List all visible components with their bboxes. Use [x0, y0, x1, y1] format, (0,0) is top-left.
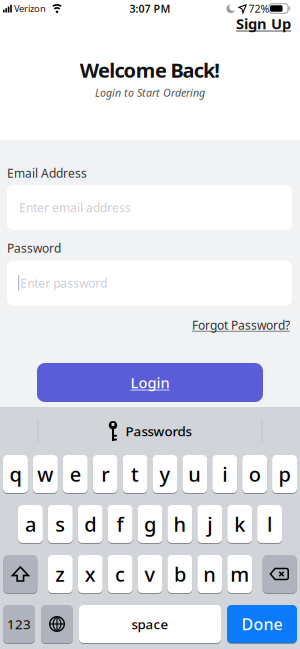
- button[interactable]: i: [212, 455, 237, 493]
- button[interactable]: Enter email address: [7, 185, 292, 230]
- staticText: 3:07 PM: [129, 1, 170, 16]
- staticText: Welcome Back!: [80, 57, 220, 83]
- staticText: n: [203, 561, 216, 587]
- button[interactable]: f: [108, 505, 132, 543]
- staticText: Password: [7, 240, 61, 256]
- staticText: h: [173, 511, 186, 537]
- staticText: v: [144, 561, 155, 587]
- staticText: Enter password: [20, 275, 107, 291]
- button[interactable]: z: [48, 555, 73, 593]
- staticText: x: [85, 561, 96, 587]
- staticText: f: [117, 511, 124, 537]
- button[interactable]: d: [78, 505, 103, 543]
- staticText: Passwords: [125, 422, 191, 440]
- button[interactable]: s: [48, 505, 73, 543]
- button[interactable]: n: [197, 555, 222, 593]
- staticText: z: [55, 561, 65, 587]
- staticText: w: [37, 461, 53, 487]
- button[interactable]: Done: [227, 605, 297, 643]
- button[interactable]: u: [182, 455, 207, 493]
- staticText: m: [230, 561, 249, 587]
- button[interactable]: [3, 555, 37, 593]
- button[interactable]: space: [79, 605, 221, 643]
- button[interactable]: g: [137, 505, 162, 543]
- staticText: o: [249, 461, 261, 487]
- button[interactable]: h: [167, 505, 192, 543]
- button[interactable]: [263, 555, 297, 593]
- button[interactable]: Sign Up: [236, 14, 291, 33]
- button[interactable]: w: [33, 455, 58, 493]
- staticText: Verizon: [14, 2, 46, 15]
- staticText: y: [159, 461, 170, 487]
- button[interactable]: Forgot Password?: [192, 317, 290, 333]
- button[interactable]: Enter password: [7, 260, 292, 305]
- button[interactable]: p: [272, 455, 297, 493]
- staticText: Enter email address: [19, 199, 131, 215]
- button[interactable]: b: [167, 555, 192, 593]
- staticText: u: [188, 461, 201, 487]
- staticText: 72%: [248, 1, 269, 16]
- staticText: Email Address: [7, 165, 87, 181]
- staticText: t: [131, 461, 139, 487]
- staticText: Login to Start Ordering: [95, 85, 205, 100]
- staticText: b: [174, 561, 186, 587]
- button[interactable]: Login: [37, 363, 263, 402]
- staticText: i: [222, 461, 227, 487]
- button[interactable]: q: [3, 455, 28, 493]
- staticText: a: [25, 511, 36, 537]
- staticText: j: [207, 511, 212, 537]
- staticText: p: [279, 461, 291, 487]
- staticText: e: [70, 461, 81, 487]
- staticText: c: [115, 561, 125, 587]
- staticText: d: [84, 511, 96, 537]
- staticText: 123: [7, 615, 31, 633]
- staticText: r: [101, 461, 109, 487]
- staticText: l: [267, 511, 272, 537]
- button[interactable]: m: [227, 555, 252, 593]
- button[interactable]: v: [137, 555, 162, 593]
- staticText: Done: [241, 613, 282, 635]
- button[interactable]: x: [78, 555, 103, 593]
- staticText: k: [234, 511, 245, 537]
- staticText: s: [55, 511, 65, 537]
- button[interactable]: l: [257, 505, 282, 543]
- button[interactable]: o: [242, 455, 267, 493]
- button[interactable]: y: [152, 455, 177, 493]
- button[interactable]: a: [18, 505, 43, 543]
- button[interactable]: j: [197, 505, 222, 543]
- button[interactable]: [41, 605, 73, 643]
- button[interactable]: r: [93, 455, 118, 493]
- button[interactable]: 123: [3, 605, 35, 643]
- button[interactable]: k: [227, 505, 252, 543]
- staticText: Sign Up: [236, 14, 291, 33]
- staticText: Login: [130, 373, 169, 392]
- staticText: q: [9, 461, 21, 487]
- button[interactable]: t: [123, 455, 147, 493]
- staticText: space: [131, 615, 168, 633]
- button[interactable]: e: [63, 455, 88, 493]
- staticText: g: [144, 511, 156, 537]
- button[interactable]: c: [108, 555, 132, 593]
- staticText: Forgot Password?: [192, 317, 290, 333]
- button[interactable]: Passwords: [108, 421, 191, 441]
